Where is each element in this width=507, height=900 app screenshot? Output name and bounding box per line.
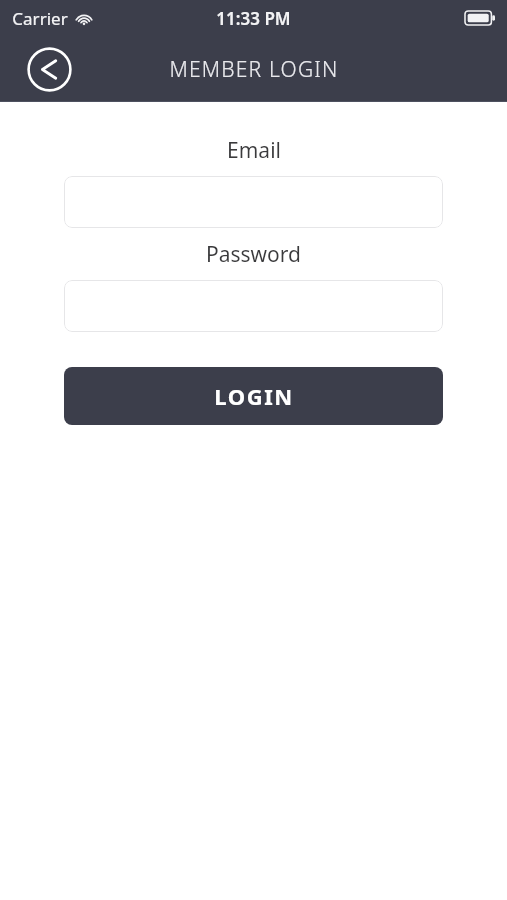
button[interactable]: LOGIN [64, 367, 443, 425]
button[interactable]: Back [26, 46, 73, 93]
button[interactable] [64, 280, 443, 332]
staticText: Carrier [12, 7, 68, 30]
button[interactable] [64, 176, 443, 228]
staticText: LOGIN [214, 381, 294, 411]
staticText: MEMBER LOGIN [169, 55, 339, 84]
staticText: Email [227, 136, 281, 165]
staticText: 11:33 PM [216, 7, 291, 30]
staticText: Password [206, 240, 301, 269]
